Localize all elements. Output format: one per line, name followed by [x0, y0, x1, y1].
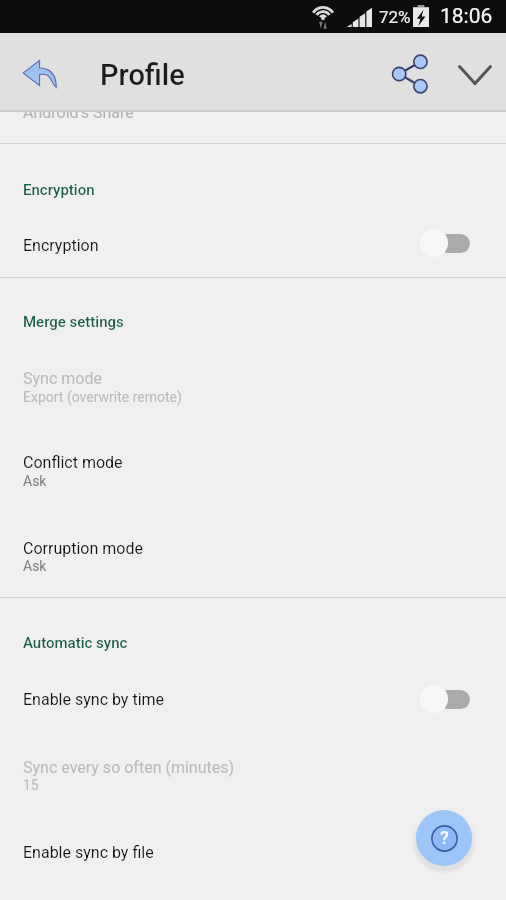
staticText: Automatic sync [23, 634, 128, 652]
staticText: Encryption [23, 236, 99, 255]
button[interactable]: Share [382, 46, 438, 102]
staticText: Enable sync by time [23, 690, 165, 709]
button[interactable]: Toggle [406, 219, 482, 267]
staticText: Corruption mode [23, 539, 143, 558]
staticText: Sync mode [23, 369, 102, 388]
staticText: Android's Share [23, 103, 134, 122]
button[interactable]: Help [416, 810, 472, 866]
staticText: Export (overwrite remote) [23, 389, 182, 405]
staticText: Profile [100, 58, 185, 92]
staticText: Sync every so often (minutes) [23, 758, 235, 777]
button[interactable]: Navigate up [12, 45, 68, 101]
staticText: 72% [379, 7, 411, 27]
staticText: Encryption [23, 181, 95, 199]
staticText: 15 [23, 777, 39, 793]
staticText: Ask [23, 473, 47, 489]
staticText: Enable sync by file [23, 843, 154, 862]
staticText: Conflict mode [23, 453, 123, 472]
staticText: 18:06 [440, 4, 493, 29]
button[interactable]: Toggle [406, 675, 482, 723]
staticText: Merge settings [23, 313, 124, 331]
staticText: Ask [23, 558, 47, 574]
staticText: ? [440, 827, 449, 848]
button[interactable]: More options [447, 47, 503, 103]
